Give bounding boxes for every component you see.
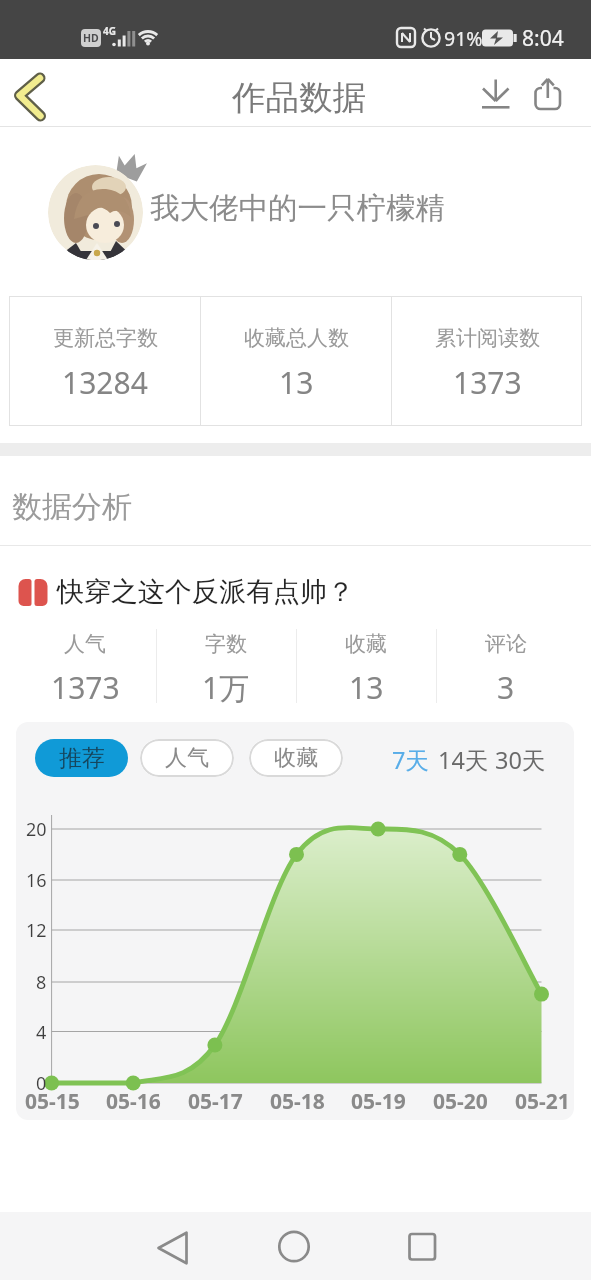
- staticText: 累计阅读数: [435, 325, 540, 351]
- staticText: 05-15: [25, 1087, 80, 1113]
- staticText: 14天: [438, 744, 489, 776]
- staticText: 收藏总人数: [244, 325, 349, 351]
- staticText: 推荐: [59, 744, 105, 773]
- staticText: 20: [26, 817, 47, 842]
- button[interactable]: [148, 1224, 196, 1272]
- staticText: 05-17: [188, 1087, 243, 1113]
- button[interactable]: 14天: [434, 744, 492, 776]
- button[interactable]: 30天: [491, 744, 549, 776]
- staticText: 13: [349, 667, 384, 705]
- staticText: 收藏: [345, 631, 387, 657]
- staticText: 13284: [62, 362, 148, 400]
- staticText: 8:04: [522, 24, 564, 53]
- staticText: 12: [26, 918, 47, 943]
- staticText: 4: [36, 1020, 47, 1045]
- staticText: 05-16: [106, 1087, 161, 1113]
- button[interactable]: [530, 72, 568, 116]
- staticText: 1万: [202, 667, 250, 705]
- staticText: HD: [83, 31, 99, 45]
- staticText: 8: [36, 970, 47, 995]
- staticText: 1373: [51, 667, 120, 705]
- button[interactable]: 7天: [383, 744, 437, 776]
- staticText: 13: [279, 362, 314, 400]
- staticText: 作品数据: [232, 77, 366, 119]
- button[interactable]: 推荐: [35, 739, 128, 777]
- button[interactable]: [478, 76, 514, 120]
- staticText: 91%: [444, 25, 483, 51]
- staticText: 收藏: [274, 744, 318, 772]
- staticText: 16: [26, 868, 47, 893]
- staticText: 我大佬中的一只柠檬精: [150, 190, 445, 227]
- staticText: 1373: [453, 362, 522, 400]
- staticText: 评论: [485, 631, 527, 657]
- staticText: 人气: [165, 744, 209, 772]
- button[interactable]: [398, 1222, 446, 1270]
- staticText: 3: [497, 667, 515, 705]
- button[interactable]: [8, 68, 58, 124]
- staticText: 05-19: [351, 1087, 406, 1113]
- staticText: 05-20: [433, 1087, 488, 1113]
- staticText: 人气: [64, 631, 106, 657]
- staticText: 更新总字数: [53, 325, 158, 351]
- button[interactable]: 人气: [140, 739, 234, 777]
- staticText: 快穿之这个反派有点帅？: [57, 575, 354, 609]
- staticText: 30天: [495, 744, 546, 776]
- staticText: 数据分析: [12, 488, 132, 526]
- staticText: 05-18: [270, 1087, 325, 1113]
- staticText: 字数: [205, 631, 247, 657]
- staticText: 7天: [392, 744, 429, 776]
- staticText: 05-21: [515, 1087, 570, 1113]
- button[interactable]: [270, 1222, 318, 1270]
- staticText: 0: [36, 1071, 47, 1096]
- button[interactable]: 收藏: [249, 739, 343, 777]
- staticText: 4G: [103, 24, 116, 38]
- button[interactable]: [48, 165, 143, 260]
